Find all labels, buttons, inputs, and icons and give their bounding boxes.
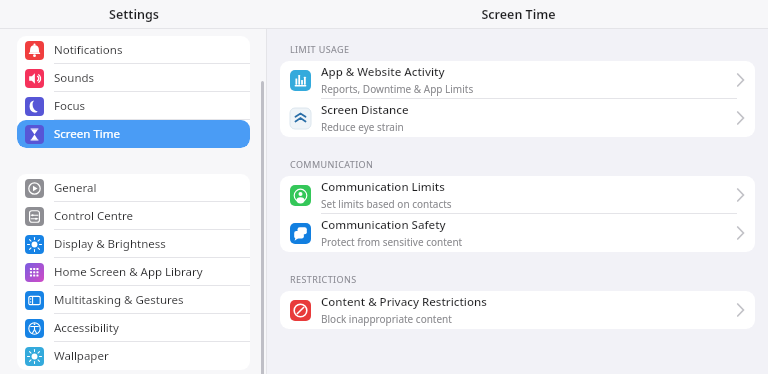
button[interactable]: Sounds <box>17 64 250 92</box>
button[interactable]: Content & Privacy Restrictions <box>280 291 755 329</box>
staticText: Set limits based on contacts <box>321 197 452 211</box>
button[interactable]: Home Screen & App Library <box>17 258 250 286</box>
staticText: Notifications <box>54 42 123 58</box>
staticText: Control Centre <box>54 208 133 224</box>
staticText: Screen Time <box>54 126 121 142</box>
staticText: Multitasking & Gestures <box>54 292 184 308</box>
button[interactable]: Screen Time <box>17 120 250 148</box>
staticText: Screen Distance <box>321 102 409 118</box>
staticText: Screen Time <box>481 6 556 23</box>
staticText: Settings <box>109 6 159 23</box>
button[interactable]: Multitasking & Gestures <box>17 286 250 314</box>
staticText: Display & Brightness <box>54 236 166 252</box>
staticText: Communication Safety <box>321 217 446 233</box>
staticText: LIMIT USAGE <box>290 43 350 55</box>
staticText: Sounds <box>54 70 95 86</box>
staticText: COMMUNICATION <box>290 158 374 170</box>
staticText: Wallpaper <box>54 348 109 364</box>
staticText: Protect from sensitive content <box>321 235 463 249</box>
staticText: Reduce eye strain <box>321 120 404 134</box>
button[interactable]: Screen Distance <box>280 99 755 137</box>
button[interactable]: Communication Limits <box>280 176 755 214</box>
staticText: Home Screen & App Library <box>54 264 203 280</box>
button[interactable]: Control Centre <box>17 202 250 230</box>
staticText: Reports, Downtime & App Limits <box>321 82 474 96</box>
staticText: App & Website Activity <box>321 64 445 80</box>
staticText: General <box>54 180 97 196</box>
staticText: Content & Privacy Restrictions <box>321 294 487 310</box>
button[interactable]: Wallpaper <box>17 342 250 370</box>
staticText: RESTRICTIONS <box>290 273 357 285</box>
button[interactable]: App & Website Activity <box>280 61 755 99</box>
button[interactable]: Accessibility <box>17 314 250 342</box>
button[interactable]: General <box>17 174 250 202</box>
staticText: Communication Limits <box>321 179 445 195</box>
staticText: Block inappropriate content <box>321 312 452 326</box>
button[interactable]: Notifications <box>17 36 250 64</box>
button[interactable]: Focus <box>17 92 250 120</box>
staticText: Focus <box>54 98 86 114</box>
button[interactable]: Display & Brightness <box>17 230 250 258</box>
staticText: Accessibility <box>54 320 119 336</box>
button[interactable]: Communication Safety <box>280 214 755 252</box>
